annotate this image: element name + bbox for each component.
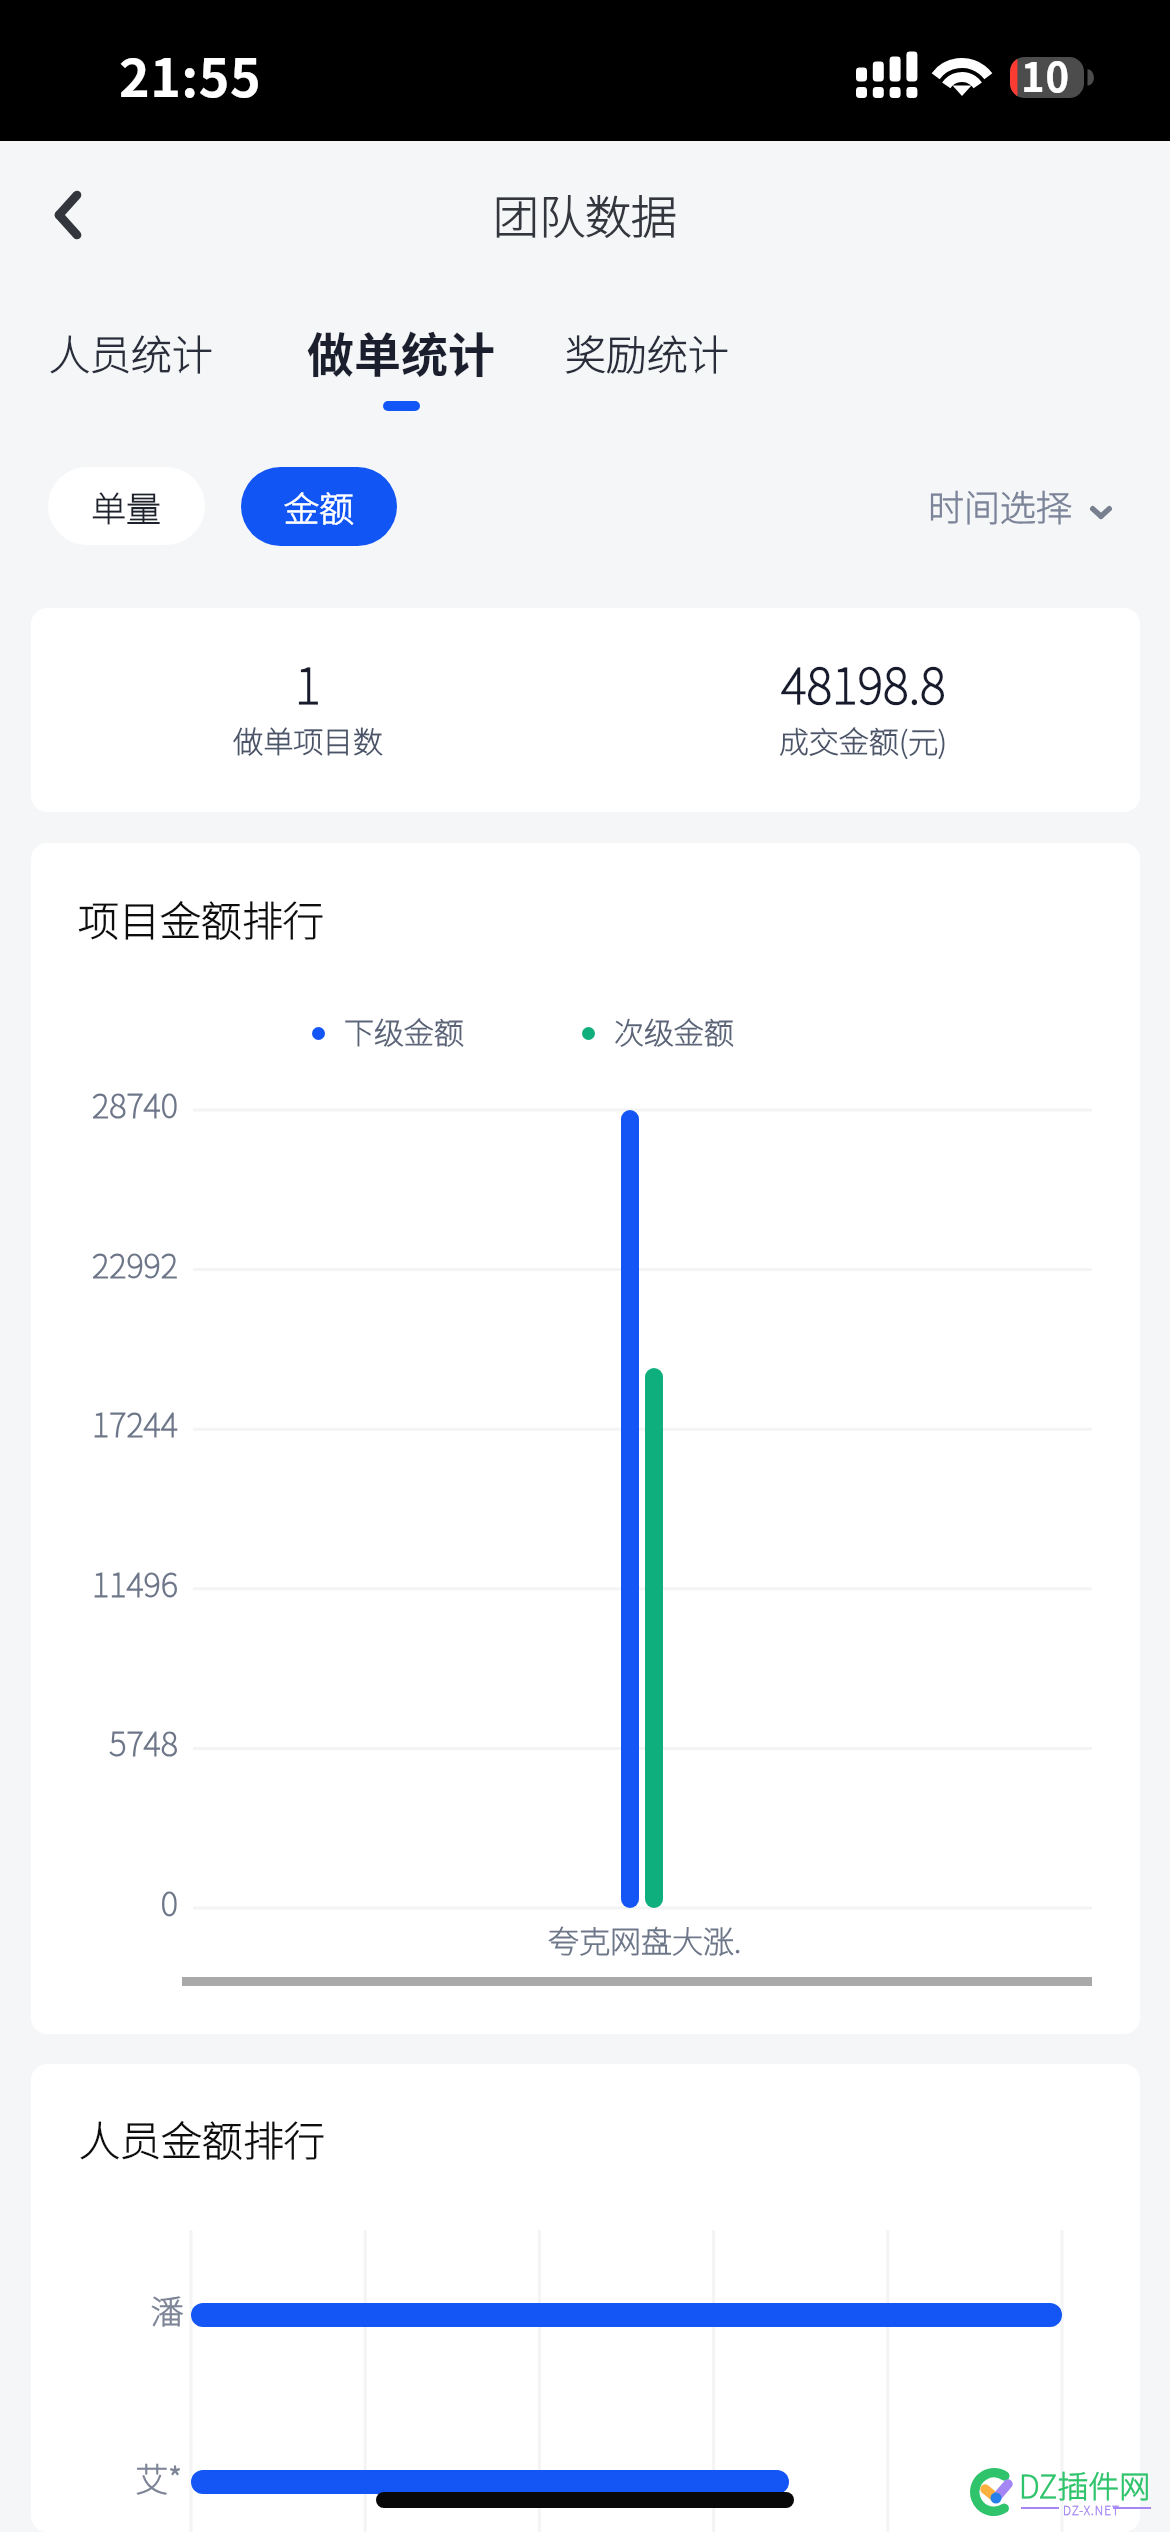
staticText: 单量 — [91, 481, 162, 532]
staticText: 潘 — [151, 2286, 184, 2334]
staticText: 10 — [1021, 46, 1070, 104]
button[interactable]: 做单统计 — [287, 304, 515, 411]
staticText: 1 — [295, 647, 321, 718]
button[interactable]: 人员统计 — [29, 306, 233, 397]
staticText: 22992 — [31, 1240, 178, 1288]
staticText: 28740 — [31, 1080, 178, 1128]
staticText: 0 — [31, 1878, 178, 1926]
staticText: 48198.8 — [781, 647, 946, 718]
staticText: 人员统计 — [49, 322, 213, 381]
staticText: DZ-X.NET — [1063, 2501, 1120, 2518]
staticText: 21:55 — [119, 37, 262, 112]
staticText: 夸克网盘大涨. — [548, 1917, 742, 1962]
staticText: 团队数据 — [493, 181, 677, 248]
staticText: 做单统计 — [307, 317, 495, 385]
button[interactable]: 金额 — [241, 467, 397, 546]
staticText: 项目金额排行 — [78, 888, 324, 947]
staticText: 下级金额 — [344, 1009, 464, 1052]
staticText: 时间选择 — [928, 479, 1073, 531]
button[interactable]: 奖励统计 — [545, 306, 749, 397]
staticText: 人员金额排行 — [79, 2108, 325, 2167]
staticText: 成交金额(元) — [779, 718, 947, 761]
staticText: 次级金额 — [614, 1009, 734, 1052]
staticText: 金额 — [284, 481, 355, 532]
staticText: 17244 — [31, 1399, 178, 1447]
staticText: 5748 — [31, 1718, 178, 1766]
staticText: DZ插件网 — [1019, 2462, 1151, 2507]
button[interactable]: 单量 — [48, 467, 205, 545]
staticText: 11496 — [31, 1559, 178, 1607]
button[interactable]: 时间选择 — [920, 469, 1120, 541]
staticText: 艾* — [135, 2454, 183, 2502]
button[interactable]: Back — [18, 165, 118, 265]
staticText: 奖励统计 — [565, 322, 729, 381]
staticText: 做单项目数 — [233, 718, 383, 761]
